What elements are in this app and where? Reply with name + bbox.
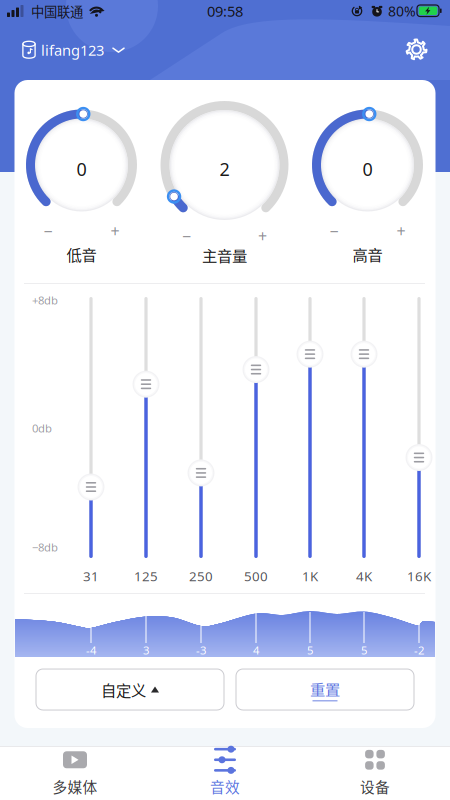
staticText: 自定义 <box>101 678 146 701</box>
button[interactable]: + <box>389 220 413 242</box>
staticText: lifang123 <box>41 40 104 60</box>
button[interactable]: 音效 <box>150 747 300 800</box>
staticText: 4K <box>356 567 372 585</box>
staticText: 音效 <box>210 776 240 797</box>
staticText: 500 <box>244 567 268 585</box>
button[interactable]: lifang123 <box>18 35 128 65</box>
button[interactable]: − <box>36 220 60 242</box>
staticText: −8db <box>32 539 58 555</box>
staticText: 80% <box>388 1 416 21</box>
staticText: 16K <box>407 567 431 585</box>
staticText: 125 <box>134 567 158 585</box>
button[interactable]: − <box>322 220 346 242</box>
staticText: +8db <box>32 292 58 308</box>
staticText: 250 <box>189 567 213 585</box>
staticText: 设备 <box>360 776 390 797</box>
staticText: − <box>182 225 191 247</box>
button[interactable]: 设备 <box>300 747 450 800</box>
staticText: − <box>329 220 338 242</box>
staticText: 多媒体 <box>52 776 97 797</box>
staticText: 31 <box>83 567 99 585</box>
staticText: 重置 <box>310 678 340 700</box>
staticText: 1K <box>302 567 318 585</box>
staticText: 中国联通 <box>31 1 83 21</box>
staticText: -4 <box>86 642 96 658</box>
staticText: − <box>43 220 52 242</box>
staticText: -2 <box>414 642 424 658</box>
staticText: + <box>396 220 405 242</box>
button[interactable]: − <box>174 225 198 247</box>
button[interactable]: + <box>103 220 127 242</box>
staticText: 主音量 <box>202 244 247 266</box>
button[interactable]: Settings <box>404 37 429 62</box>
button[interactable]: 自定义 <box>36 669 224 710</box>
staticText: 4 <box>253 642 259 658</box>
staticText: 0 <box>76 157 86 181</box>
staticText: 高音 <box>352 243 382 265</box>
staticText: + <box>258 225 267 247</box>
staticText: 0 <box>362 157 372 181</box>
button[interactable]: + <box>250 225 274 247</box>
staticText: 5 <box>307 642 313 658</box>
staticText: 0db <box>32 420 52 436</box>
button[interactable]: 重置 <box>236 669 414 710</box>
staticText: 2 <box>219 157 229 181</box>
button[interactable]: 多媒体 <box>0 747 150 800</box>
staticText: 3 <box>143 642 149 658</box>
staticText: 低音 <box>66 243 96 265</box>
staticText: + <box>110 220 119 242</box>
staticText: 09:58 <box>207 1 243 21</box>
staticText: 5 <box>361 642 367 658</box>
staticText: -3 <box>196 642 206 658</box>
